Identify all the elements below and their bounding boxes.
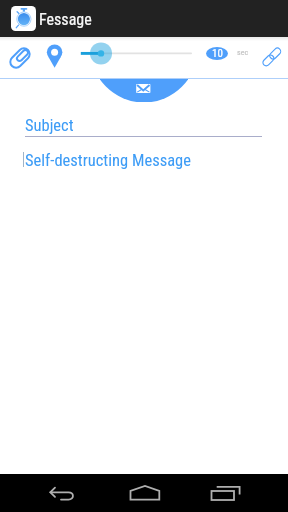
staticText: Subject (25, 116, 74, 135)
staticText: Fessage (39, 10, 92, 29)
button[interactable]: Home (125, 474, 165, 512)
button[interactable]: Attach location (41, 43, 69, 71)
staticText: sec (237, 48, 249, 57)
button[interactable]: 10 (206, 47, 228, 60)
button[interactable]: Attach file (6, 44, 34, 72)
button[interactable]: Send message (100, 78, 188, 102)
button[interactable]: Attach link (260, 45, 284, 69)
button[interactable]: Self destruct timer (78, 42, 196, 66)
staticText: Self-destructing Message (25, 151, 191, 170)
button[interactable]: Back (44, 474, 84, 512)
button[interactable]: Fessage app icon (11, 6, 36, 31)
button[interactable]: Recent apps (206, 474, 246, 512)
button[interactable]: Subject (22, 112, 266, 140)
staticText: 10 (212, 47, 223, 60)
button[interactable]: Self-destructing Message (22, 148, 266, 174)
